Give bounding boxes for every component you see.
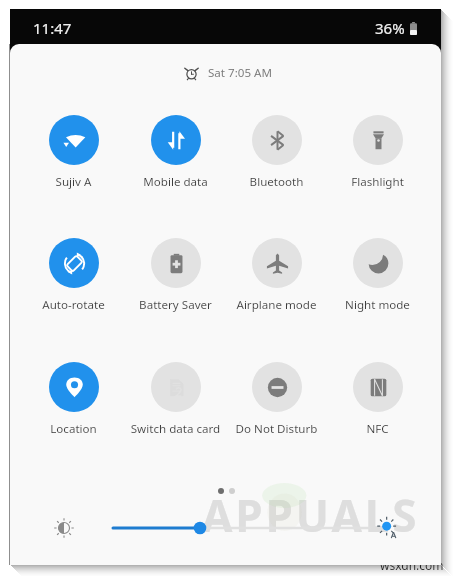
button[interactable]: Page 2: [229, 488, 235, 494]
staticText: Do Not Disturb: [226, 421, 327, 437]
staticText: 11:47: [33, 18, 72, 38]
staticText: Mobile data: [125, 174, 226, 190]
button[interactable]: Sujiv A: [23, 115, 124, 190]
button[interactable]: Mobile data: [125, 115, 226, 190]
staticText: Auto-rotate: [23, 297, 124, 313]
button[interactable]: Auto brightness: [374, 514, 402, 542]
button[interactable]: Brightness slider: [109, 514, 374, 542]
button[interactable]: Brightness: [50, 514, 78, 542]
button[interactable]: Battery Saver: [125, 238, 226, 313]
staticText: Bluetooth: [226, 174, 327, 190]
staticText: APPUALS: [202, 485, 420, 545]
staticText: Switch data card: [125, 421, 226, 437]
button[interactable]: Auto-rotate: [23, 238, 124, 313]
staticText: Night mode: [327, 297, 428, 313]
button[interactable]: Bluetooth: [226, 115, 327, 190]
staticText: Sujiv A: [23, 174, 124, 190]
staticText: Sat 7:05 AM: [208, 65, 273, 81]
staticText: Airplane mode: [226, 297, 327, 313]
staticText: 36%: [375, 18, 405, 38]
button[interactable]: Do Not Disturb: [226, 362, 327, 437]
button[interactable]: Night mode: [327, 238, 428, 313]
button[interactable]: Flashlight: [327, 115, 428, 190]
staticText: Battery Saver: [125, 297, 226, 313]
staticText: Location: [23, 421, 124, 437]
button[interactable]: Switch data card: [125, 362, 226, 437]
button[interactable]: NFC: [327, 362, 428, 437]
staticText: wsxdn.com: [380, 557, 444, 573]
button[interactable]: Airplane mode: [226, 238, 327, 313]
button[interactable]: Location: [23, 362, 124, 437]
staticText: NFC: [327, 421, 428, 437]
button[interactable]: Page 1: [218, 488, 224, 494]
staticText: Flashlight: [327, 174, 428, 190]
